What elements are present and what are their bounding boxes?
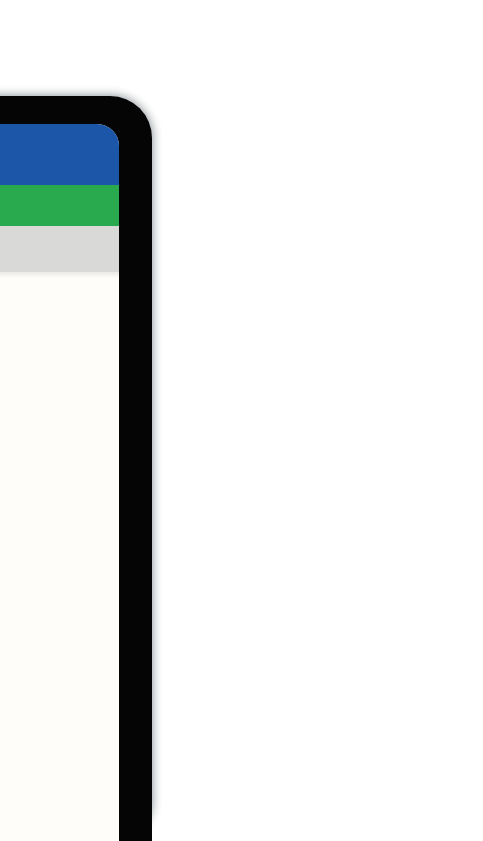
- button[interactable]: Phone preview of app screen: [0, 0, 483, 841]
